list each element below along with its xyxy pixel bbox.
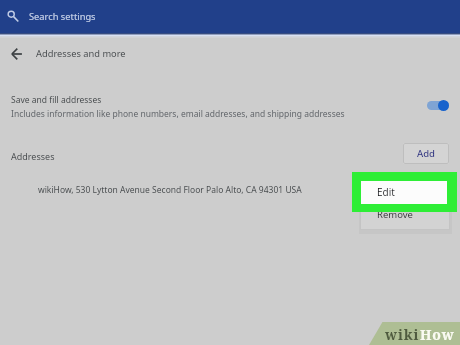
staticText: Edit: [377, 185, 395, 199]
staticText: wiki: [385, 325, 420, 344]
button[interactable]: Search: [4, 7, 23, 26]
button[interactable]: Back: [0, 38, 460, 70]
staticText: Edit: [377, 186, 395, 200]
button[interactable]: Edit: [360, 177, 450, 204]
button[interactable]: Search: [0, 0, 460, 33]
staticText: wikiHow, 530 Lytton Avenue Second Floor …: [38, 184, 302, 196]
staticText: Remove: [377, 208, 413, 221]
staticText: Search settings: [29, 10, 96, 23]
staticText: How: [420, 325, 455, 344]
button[interactable]: Edit: [361, 181, 447, 204]
button[interactable]: Save and fill addresses: [0, 90, 460, 122]
button[interactable]: Remove: [360, 204, 450, 231]
button[interactable]: Save and fill addresses: [427, 99, 449, 112]
button[interactable]: Add: [403, 143, 449, 164]
button[interactable]: Back: [8, 45, 26, 63]
staticText: Save and fill addresses: [11, 94, 102, 106]
button[interactable]: wikiHow, 530 Lytton Avenue Second Floor …: [0, 178, 460, 202]
staticText: Addresses: [11, 150, 55, 162]
staticText: Add: [417, 147, 436, 160]
staticText: Addresses and more: [36, 47, 126, 60]
staticText: Includes information like phone numbers,…: [11, 108, 345, 120]
